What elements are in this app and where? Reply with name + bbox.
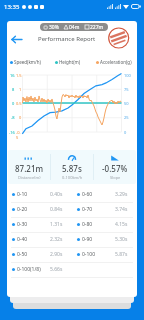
staticText: Performance Report (38, 35, 96, 43)
staticText: 0.40s (50, 191, 63, 198)
staticText: 0-80 (82, 221, 93, 228)
staticText: Distance(m) (18, 175, 41, 180)
staticText: 1 (19, 87, 22, 92)
staticText: 50 (124, 101, 129, 106)
staticText: 0-100(1/8) (17, 266, 41, 273)
staticText: Height(m) (59, 59, 81, 65)
button[interactable]: 0-100(1/8) (7, 262, 137, 277)
staticText: 0-70 (82, 206, 93, 213)
staticText: 13:35 (4, 3, 20, 11)
staticText: 16 (10, 73, 15, 78)
staticText: 5.30s (115, 236, 128, 243)
staticText: 30% (49, 24, 59, 31)
staticText: 0-50 (17, 251, 28, 258)
button[interactable]: 0-50 (7, 247, 137, 262)
button[interactable]: 0-20 (7, 202, 137, 217)
button[interactable]: 0-30 (7, 217, 137, 232)
staticText: -0.57% (102, 163, 128, 174)
staticText: 0.5 (16, 101, 22, 106)
staticText: 0-10 (17, 191, 28, 198)
staticText: 2.90s (50, 251, 63, 258)
staticText: Speed(km/h) (14, 59, 41, 65)
staticText: 0 (19, 115, 22, 120)
staticText: -16 (9, 130, 15, 135)
staticText: 0-100 (82, 251, 96, 258)
staticText: 87.21m (15, 163, 44, 174)
staticText: 75 (124, 87, 129, 92)
staticText: -8 (11, 115, 15, 120)
staticText: 25 (124, 115, 129, 120)
staticText: 5.87s (115, 251, 128, 258)
staticText: 0-100km/h (62, 175, 83, 180)
staticText: 4.15s (115, 221, 128, 228)
staticText: 227m (90, 24, 104, 31)
staticText: 3.29s (115, 191, 128, 198)
staticText: 5.66s (50, 266, 63, 273)
staticText: 0 (12, 101, 15, 106)
staticText: 100 (124, 73, 131, 78)
staticText: 0-40 (17, 236, 28, 243)
staticText: 0 (124, 130, 127, 135)
button[interactable]: -0.57% (94, 150, 136, 184)
staticText: 8 (12, 87, 15, 92)
staticText: 5.87s (62, 163, 82, 174)
staticText: Slope (110, 175, 121, 180)
staticText: 0-60 (82, 191, 93, 198)
staticText: 0.84s (50, 206, 63, 213)
staticText: 1.5 (16, 73, 22, 78)
staticText: 0-20 (17, 206, 28, 213)
staticText: 1.31s (50, 221, 63, 228)
button[interactable]: Back (8, 31, 24, 47)
staticText: 3.74s (115, 206, 128, 213)
staticText: -0.5 (16, 130, 22, 140)
staticText: 0-90 (82, 236, 93, 243)
staticText: 04m (69, 24, 80, 31)
button[interactable]: 0-40 (7, 232, 137, 247)
staticText: 2.32s (50, 236, 63, 243)
button[interactable]: 87.21m (8, 150, 50, 184)
button[interactable]: 0-10 (7, 187, 137, 202)
staticText: Acceleration(g) (100, 59, 132, 65)
staticText: 0-30 (17, 221, 28, 228)
button[interactable]: 5.87s (51, 150, 93, 184)
